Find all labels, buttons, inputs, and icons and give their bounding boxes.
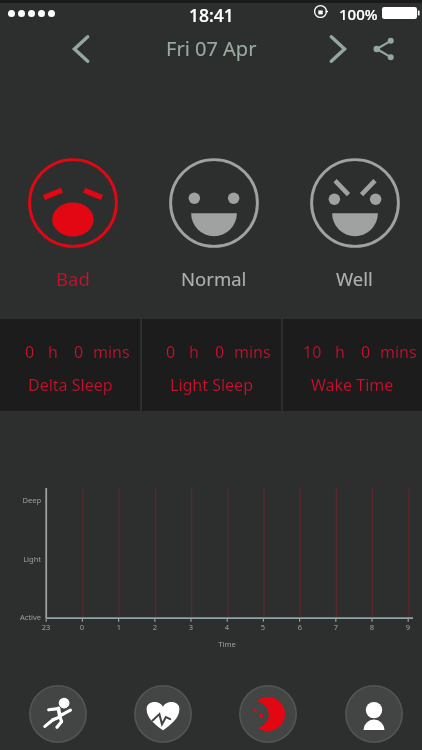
staticText: 3 [179, 622, 203, 632]
staticText: 0 [70, 622, 94, 632]
staticText: 0 [25, 341, 35, 363]
button[interactable]: Sleep [239, 685, 297, 743]
button[interactable]: 10 [283, 319, 422, 411]
staticText: mins [93, 341, 130, 363]
staticText: Active [0, 612, 41, 622]
staticText: 0 [361, 341, 371, 363]
button[interactable]: 0 [142, 319, 281, 411]
button[interactable]: Normal [143, 158, 284, 291]
staticText: 10 [303, 341, 322, 363]
staticText: h [189, 341, 199, 363]
staticText: h [335, 341, 345, 363]
staticText: mins [380, 341, 417, 363]
staticText: 9 [396, 622, 420, 632]
staticText: h [48, 341, 58, 363]
staticText: 4 [215, 622, 239, 632]
button[interactable]: Share [363, 28, 405, 70]
staticText: 18:41 [189, 3, 234, 27]
staticText: 6 [288, 622, 312, 632]
staticText: Light [0, 554, 41, 564]
button[interactable]: Next day [317, 28, 359, 70]
staticText: 23 [34, 622, 58, 632]
button[interactable]: 0 [0, 319, 140, 411]
staticText: Fri 07 Apr [166, 35, 257, 62]
staticText: Well [336, 266, 373, 291]
staticText: 0 [166, 341, 176, 363]
staticText: 8 [360, 622, 384, 632]
button[interactable]: Bad [3, 158, 143, 291]
staticText: Time [203, 639, 251, 649]
staticText: 100% [339, 4, 378, 24]
staticText: 1 [107, 622, 131, 632]
staticText: Bad [56, 266, 90, 291]
staticText: Light Sleep [170, 374, 253, 396]
button[interactable]: Profile [345, 685, 403, 743]
staticText: Delta Sleep [28, 374, 113, 396]
staticText: Deep [0, 495, 41, 505]
staticText: 2 [143, 622, 167, 632]
staticText: Normal [181, 266, 247, 291]
staticText: 0 [215, 341, 225, 363]
staticText: 5 [251, 622, 275, 632]
button[interactable]: Activity [29, 685, 87, 743]
button[interactable]: Well [284, 158, 422, 291]
button[interactable]: Previous day [60, 28, 102, 70]
staticText: mins [234, 341, 271, 363]
staticText: 7 [324, 622, 348, 632]
staticText: 0 [74, 341, 84, 363]
staticText: Wake Time [311, 374, 394, 396]
button[interactable]: Heart rate [134, 685, 192, 743]
